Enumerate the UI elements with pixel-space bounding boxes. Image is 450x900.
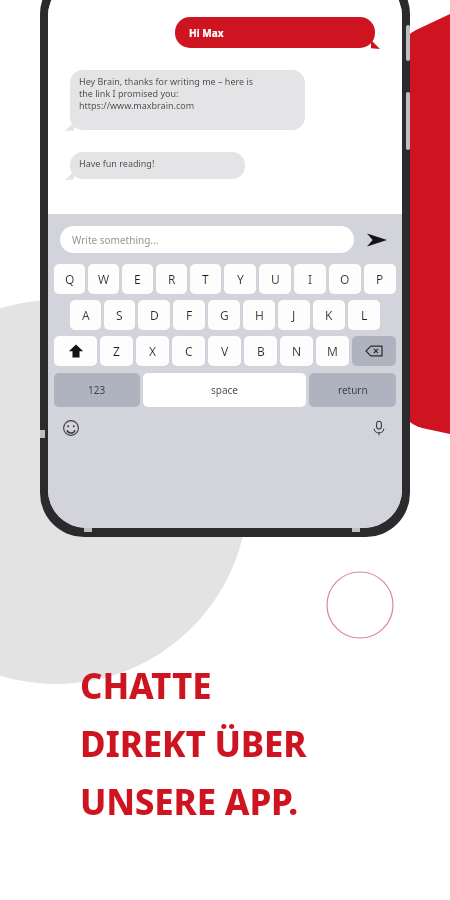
button[interactable]: P bbox=[364, 264, 396, 294]
staticText: J bbox=[292, 307, 296, 323]
staticText: D bbox=[150, 307, 159, 323]
button[interactable]: space bbox=[143, 373, 306, 407]
button[interactable]: V bbox=[208, 336, 241, 366]
staticText: O bbox=[340, 271, 350, 287]
staticText: the link I promised you: bbox=[79, 87, 179, 99]
button[interactable]: Q bbox=[54, 264, 85, 294]
staticText: 123 bbox=[88, 383, 106, 397]
staticText: E bbox=[134, 271, 141, 287]
button[interactable]: D bbox=[138, 300, 170, 330]
button[interactable]: E bbox=[122, 264, 153, 294]
button[interactable]: F bbox=[173, 300, 205, 330]
button[interactable]: L bbox=[348, 300, 380, 330]
staticText: Z bbox=[113, 343, 120, 359]
button[interactable]: O bbox=[329, 264, 361, 294]
staticText: I bbox=[308, 271, 313, 287]
staticText: Hi Max bbox=[189, 26, 224, 40]
button[interactable]: J bbox=[278, 300, 310, 330]
button[interactable]: Hi Max bbox=[175, 17, 375, 48]
button[interactable]: C bbox=[172, 336, 205, 366]
button[interactable]: W bbox=[88, 264, 119, 294]
staticText: W bbox=[98, 271, 110, 287]
button[interactable]: I bbox=[294, 264, 326, 294]
button[interactable]: Y bbox=[224, 264, 256, 294]
staticText: https://www.maxbrain.com bbox=[79, 99, 195, 111]
staticText: B bbox=[257, 343, 265, 359]
button[interactable]: U bbox=[259, 264, 291, 294]
button[interactable]: T bbox=[190, 264, 221, 294]
button[interactable]: M bbox=[316, 336, 349, 366]
button[interactable]: Write something... bbox=[60, 226, 354, 253]
button[interactable]: Hey Brain, thanks for writing me – here … bbox=[70, 70, 305, 130]
staticText: M bbox=[327, 343, 338, 359]
staticText: R bbox=[168, 271, 176, 287]
button[interactable]: A bbox=[70, 300, 101, 330]
staticText: S bbox=[116, 307, 123, 323]
button[interactable]: K bbox=[313, 300, 345, 330]
button[interactable]: Backspace bbox=[352, 336, 396, 366]
button[interactable]: B bbox=[244, 336, 277, 366]
staticText: space bbox=[211, 383, 238, 397]
staticText: G bbox=[220, 307, 229, 323]
button[interactable]: Send bbox=[364, 227, 390, 253]
button[interactable]: G bbox=[208, 300, 240, 330]
staticText: P bbox=[376, 271, 384, 287]
staticText: N bbox=[292, 343, 302, 359]
staticText: return bbox=[338, 383, 368, 397]
staticText: Write something... bbox=[72, 233, 159, 247]
staticText: X bbox=[149, 343, 157, 359]
staticText: T bbox=[202, 271, 209, 287]
button[interactable]: H bbox=[243, 300, 275, 330]
staticText: Have fun reading! bbox=[79, 157, 155, 169]
staticText: F bbox=[186, 307, 193, 323]
staticText: C bbox=[185, 343, 193, 359]
button[interactable]: Z bbox=[100, 336, 133, 366]
button[interactable]: Emoji bbox=[60, 417, 82, 439]
button[interactable]: S bbox=[104, 300, 135, 330]
button[interactable]: return bbox=[309, 373, 396, 407]
staticText: CHATTE bbox=[80, 662, 212, 710]
staticText: K bbox=[325, 307, 333, 323]
staticText: V bbox=[221, 343, 229, 359]
button[interactable]: N bbox=[280, 336, 313, 366]
staticText: DIREKT ÜBER bbox=[80, 720, 307, 768]
button[interactable]: Microphone bbox=[368, 417, 390, 439]
button[interactable]: Shift bbox=[54, 336, 97, 366]
staticText: UNSERE APP. bbox=[80, 778, 299, 826]
button[interactable]: Have fun reading! bbox=[70, 152, 245, 179]
staticText: U bbox=[271, 271, 280, 287]
button[interactable]: R bbox=[156, 264, 187, 294]
staticText: Hey Brain, thanks for writing me – here … bbox=[79, 75, 254, 87]
button[interactable]: X bbox=[136, 336, 169, 366]
staticText: Y bbox=[237, 271, 244, 287]
staticText: A bbox=[82, 307, 90, 323]
staticText: H bbox=[255, 307, 264, 323]
staticText: L bbox=[361, 307, 368, 323]
staticText: Q bbox=[65, 271, 75, 287]
button[interactable]: 123 bbox=[54, 373, 140, 407]
